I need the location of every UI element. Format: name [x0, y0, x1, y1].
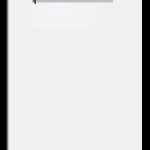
button[interactable]: Navigate up	[33, 0, 36, 4]
